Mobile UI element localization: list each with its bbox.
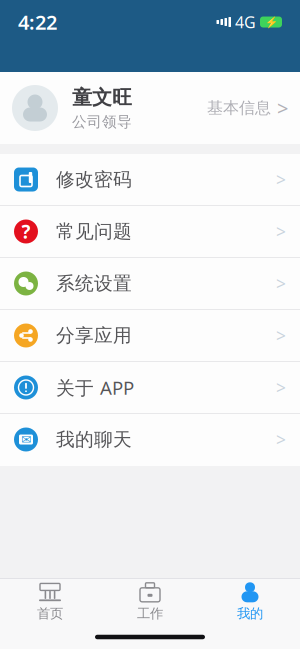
button[interactable]: 分享应用 xyxy=(0,310,300,362)
button[interactable]: 系统设置 xyxy=(0,258,300,310)
button[interactable]: 关于 APP xyxy=(0,362,300,414)
staticText: 童文旺 xyxy=(72,85,132,110)
button[interactable]: ✉ xyxy=(0,414,300,466)
staticText: 我的聊天 xyxy=(56,428,132,451)
staticText: 关于 APP xyxy=(56,375,134,400)
staticText: > xyxy=(276,428,286,451)
button[interactable]: 工作 xyxy=(100,579,200,625)
staticText: ⚡ xyxy=(264,16,277,28)
staticText: ✉ xyxy=(21,433,31,446)
staticText: > xyxy=(276,168,286,191)
staticText: 我的 xyxy=(237,605,263,622)
staticText: 首页 xyxy=(37,605,63,622)
staticText: 系统设置 xyxy=(56,272,132,295)
staticText: > xyxy=(276,272,286,295)
staticText: 公司领导 xyxy=(72,113,132,131)
button[interactable]: 童文旺 xyxy=(0,72,300,144)
button[interactable]: ? xyxy=(0,206,300,258)
staticText: 常见问题 xyxy=(56,220,132,243)
staticText: 工作 xyxy=(137,605,163,622)
staticText: 分享应用 xyxy=(56,324,132,347)
button[interactable]: 我的 xyxy=(200,579,300,625)
button[interactable]: ⌂ xyxy=(0,579,100,625)
staticText: ? xyxy=(21,219,30,244)
button[interactable]: 修改密码 xyxy=(0,154,300,206)
staticText: > xyxy=(276,376,286,399)
staticText: 修改密码 xyxy=(56,168,132,191)
staticText: 基本信息 xyxy=(207,98,271,118)
staticText: 4:22 xyxy=(18,9,57,35)
staticText: > xyxy=(276,324,286,347)
staticText: > xyxy=(276,220,286,243)
staticText: > xyxy=(277,95,288,121)
staticText: 4G xyxy=(235,11,256,33)
